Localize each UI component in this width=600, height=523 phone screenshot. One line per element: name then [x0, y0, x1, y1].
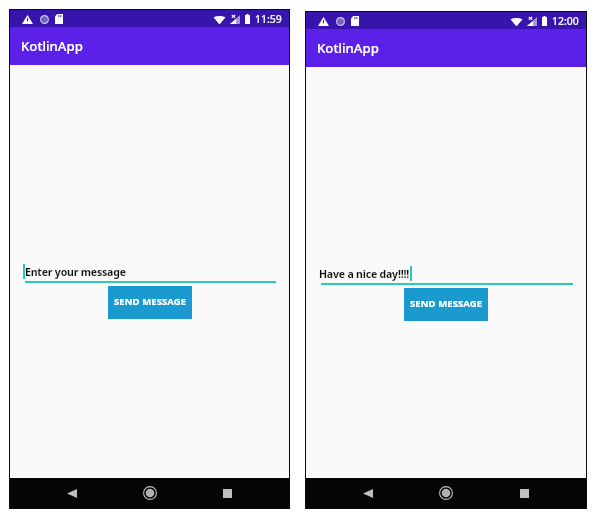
staticText: 11:59	[255, 12, 282, 26]
button[interactable]: SEND MESSAGE	[404, 288, 488, 321]
button[interactable]: Home	[135, 478, 165, 508]
staticText: Have a nice day!!!!	[319, 267, 410, 281]
staticText: 12:00	[552, 14, 579, 28]
button[interactable]: SEND MESSAGE	[108, 286, 192, 319]
staticText: KotlinApp	[21, 37, 83, 55]
staticText: SEND MESSAGE	[410, 297, 483, 310]
staticText: Enter your message	[25, 265, 126, 279]
button[interactable]: Recent apps	[509, 478, 539, 508]
button[interactable]: Back	[353, 478, 383, 508]
staticText: KotlinApp	[317, 39, 379, 57]
button[interactable]: Home	[431, 478, 461, 508]
button[interactable]: Recent apps	[212, 478, 242, 508]
staticText: SEND MESSAGE	[114, 295, 187, 308]
button[interactable]: Back	[57, 478, 87, 508]
